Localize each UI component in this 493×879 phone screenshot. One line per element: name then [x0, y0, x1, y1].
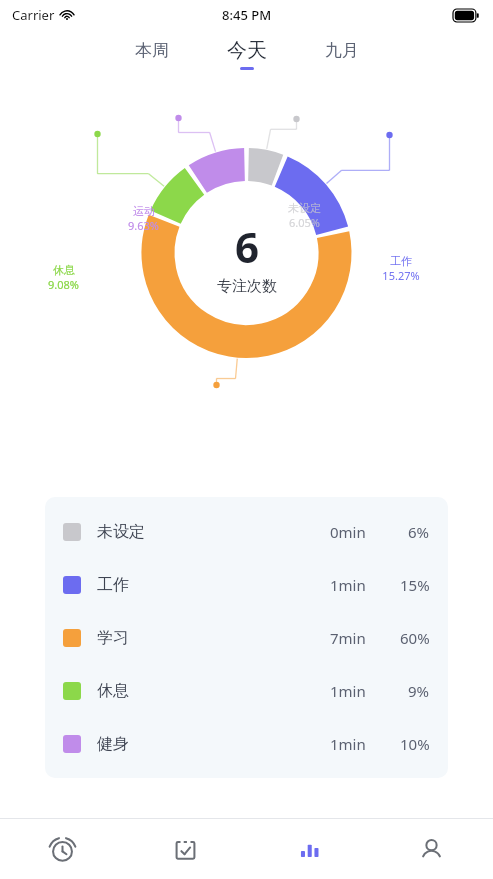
staticText: 专注次数 [217, 277, 277, 296]
button[interactable]: 工作 [45, 558, 448, 611]
staticText: 9.08% [48, 277, 79, 292]
staticText: 健身 [97, 734, 129, 754]
staticText: 未设定 [288, 201, 321, 215]
staticText: 九月 [325, 40, 359, 61]
staticText: 9% [408, 681, 430, 701]
staticText: 1min [330, 734, 366, 754]
button[interactable]: 九月 [319, 38, 365, 70]
staticText: 7min [330, 628, 366, 648]
button[interactable]: 休息 [45, 664, 448, 717]
staticText: 休息 [97, 681, 129, 701]
staticText: 6% [408, 522, 430, 542]
staticText: 15.27% [382, 268, 420, 283]
button[interactable]: Statistics [247, 819, 370, 879]
staticText: 工作 [390, 254, 412, 268]
staticText: 6.05% [289, 215, 320, 230]
button[interactable]: Tasks [124, 819, 247, 879]
staticText: 运动 [133, 204, 155, 218]
staticText: 本周 [135, 40, 169, 61]
button[interactable]: 今天 [221, 36, 273, 72]
staticText: 今天 [227, 38, 267, 63]
staticText: 15% [400, 575, 430, 595]
staticText: Carrier [12, 6, 55, 24]
button[interactable]: Timer [0, 819, 124, 879]
staticText: 工作 [97, 575, 129, 595]
staticText: 10% [400, 734, 430, 754]
staticText: 8:45 PM [222, 6, 272, 24]
staticText: 学习 [97, 628, 129, 648]
staticText: 1min [330, 575, 366, 595]
button[interactable]: 学习 [45, 611, 448, 664]
button[interactable]: 健身 [45, 717, 448, 770]
button[interactable]: 未设定 [45, 505, 448, 558]
staticText: 休息 [53, 263, 75, 277]
staticText: 未设定 [97, 522, 145, 542]
staticText: 1min [330, 681, 366, 701]
staticText: 6 [235, 218, 260, 275]
staticText: 9.63% [128, 218, 159, 233]
button[interactable]: Profile [370, 819, 493, 879]
staticText: 0min [330, 522, 366, 542]
staticText: 60% [400, 628, 430, 648]
button[interactable]: 本周 [129, 38, 175, 70]
